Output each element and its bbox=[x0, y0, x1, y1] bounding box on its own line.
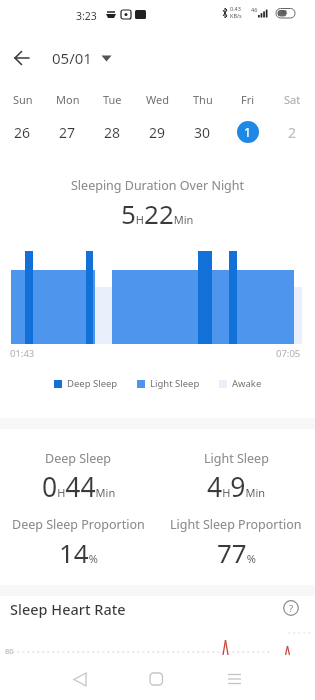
staticText: Wed bbox=[146, 92, 169, 107]
staticText: 77% bbox=[217, 535, 256, 570]
staticText: 28 bbox=[104, 123, 121, 142]
staticText: Sun bbox=[13, 92, 33, 107]
staticText: 80 bbox=[5, 646, 14, 656]
staticText: Mon bbox=[56, 92, 80, 107]
staticText: 0.43 bbox=[230, 5, 241, 12]
staticText: Sleep Heart Rate bbox=[10, 599, 126, 619]
staticText: 26 bbox=[14, 123, 31, 142]
staticText: 30 bbox=[194, 123, 211, 142]
staticText: 46 bbox=[251, 6, 258, 13]
staticText: Deep Sleep bbox=[67, 377, 118, 390]
staticText: 1 bbox=[244, 124, 252, 141]
staticText: 0H44Min bbox=[42, 469, 116, 505]
staticText: Deep Sleep bbox=[45, 450, 112, 467]
staticText: Sat bbox=[284, 92, 301, 107]
staticText: Fri bbox=[241, 92, 255, 107]
staticText: Awake bbox=[232, 377, 262, 390]
staticText: Light Sleep bbox=[150, 377, 200, 390]
staticText: 05/01 bbox=[52, 48, 92, 68]
staticText: Light Sleep Proportion bbox=[170, 516, 302, 533]
staticText: 07:05 bbox=[276, 347, 301, 360]
staticText: KB/s bbox=[230, 12, 242, 19]
staticText: Deep Sleep Proportion bbox=[12, 516, 145, 533]
staticText: 3:23 bbox=[76, 9, 97, 23]
staticText: Sleeping Duration Over Night bbox=[71, 177, 245, 194]
staticText: 27 bbox=[59, 123, 76, 142]
staticText: Tue bbox=[103, 92, 122, 107]
staticText: 36 bbox=[281, 8, 288, 15]
staticText: 29 bbox=[149, 123, 166, 142]
staticText: 5H22Min bbox=[121, 196, 194, 231]
staticText: Thu bbox=[193, 92, 213, 107]
staticText: 2 bbox=[288, 123, 297, 142]
staticText: 14% bbox=[59, 535, 98, 570]
staticText: 4H9Min bbox=[207, 469, 266, 505]
staticText: 01:43 bbox=[10, 347, 35, 360]
staticText: Light Sleep bbox=[204, 450, 269, 467]
staticText: ? bbox=[289, 602, 294, 615]
